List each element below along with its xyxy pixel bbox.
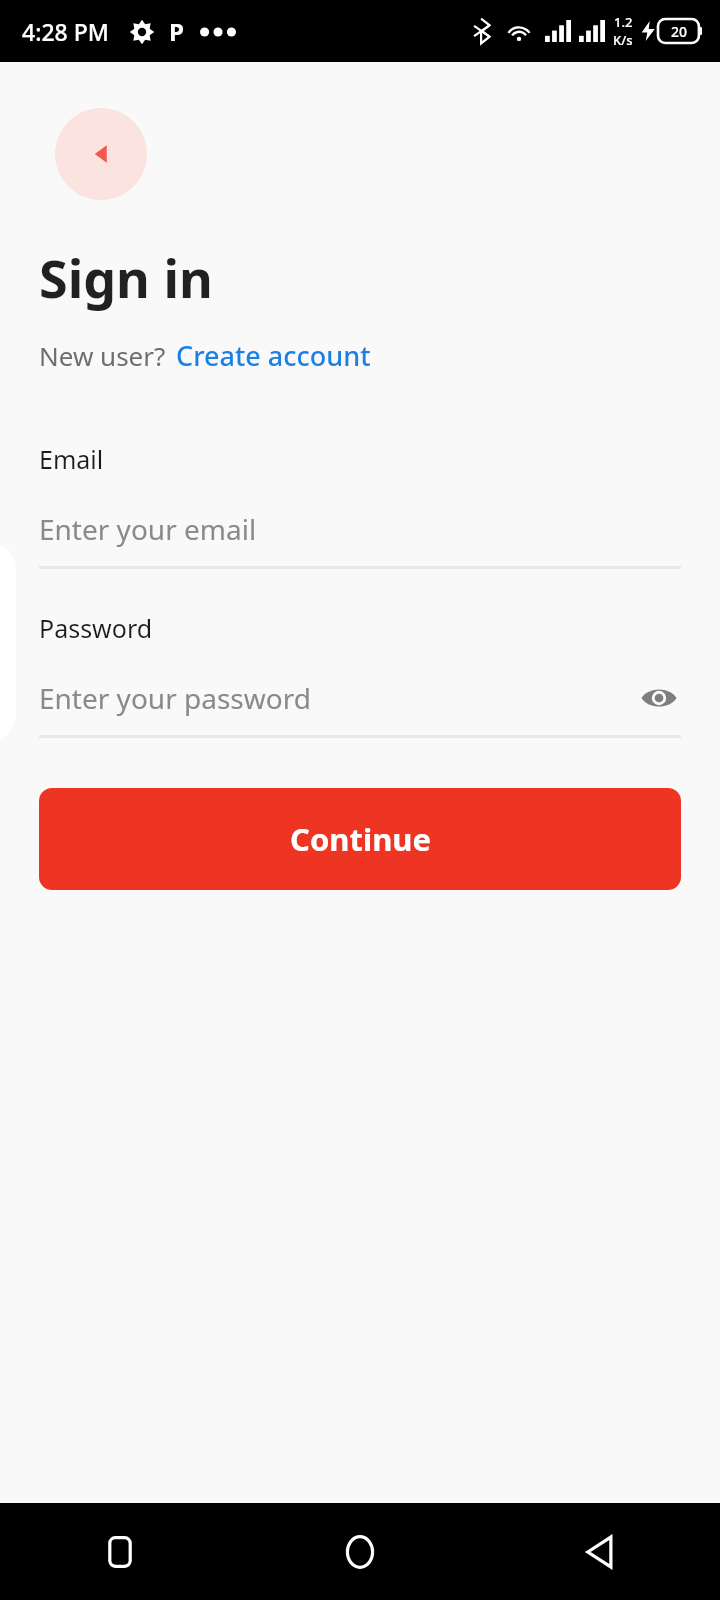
staticText: Sign in	[39, 242, 213, 313]
button[interactable]: Recents	[0, 1503, 240, 1600]
staticText: Email	[39, 442, 104, 476]
staticText: K/s	[613, 31, 633, 49]
button[interactable]: Back	[480, 1503, 720, 1600]
staticText: 4:28 PM	[22, 16, 109, 47]
staticText: Enter your email	[39, 510, 257, 548]
staticText: Password	[39, 611, 153, 645]
button[interactable]: Enter your email	[39, 506, 681, 552]
staticText: Create account	[176, 337, 371, 374]
staticText: P	[169, 15, 184, 48]
staticText: 20	[671, 22, 688, 41]
button[interactable]: Create account	[176, 337, 371, 374]
staticText: Enter your password	[39, 679, 637, 717]
staticText: New user?	[39, 338, 166, 373]
staticText: Continue	[290, 818, 431, 860]
button[interactable]: Back	[55, 108, 147, 200]
button[interactable]: Show password	[637, 676, 681, 720]
button[interactable]: Continue	[39, 788, 681, 890]
staticText: 1.2	[614, 13, 633, 31]
button[interactable]: Home	[240, 1503, 480, 1600]
button[interactable]: Enter your password	[39, 675, 681, 721]
